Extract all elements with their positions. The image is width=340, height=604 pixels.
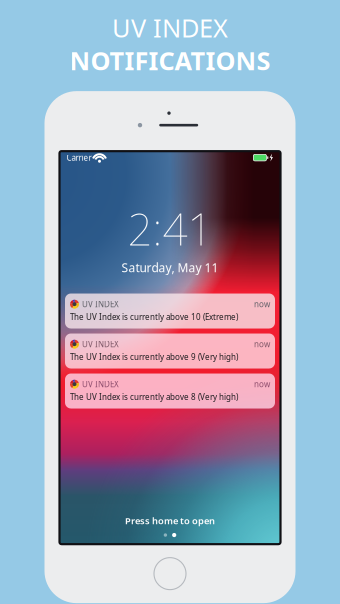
button[interactable]: UV INDEX [65,333,275,368]
staticText: The UV Index is currently above 8 (Very … [70,391,238,402]
staticText: Carrier [66,152,91,163]
staticText: now [254,299,270,309]
staticText: UV INDEX [82,379,119,389]
staticText: now [254,339,270,349]
staticText: Press home to open [125,514,215,527]
button[interactable]: UV INDEX [65,293,275,328]
staticText: 2:41 [127,199,212,257]
staticText: UV INDEX [82,299,119,309]
staticText: now [254,379,270,389]
staticText: The UV Index is currently above 9 (Very … [70,351,238,362]
staticText: The UV Index is currently above 10 (Extr… [70,311,238,322]
staticText: UV INDEX [82,339,119,349]
staticText: NOTIFICATIONS [69,43,270,77]
staticText: UV INDEX [112,11,228,44]
button[interactable]: UV INDEX [65,373,275,408]
staticText: Saturday, May 11 [121,260,218,275]
